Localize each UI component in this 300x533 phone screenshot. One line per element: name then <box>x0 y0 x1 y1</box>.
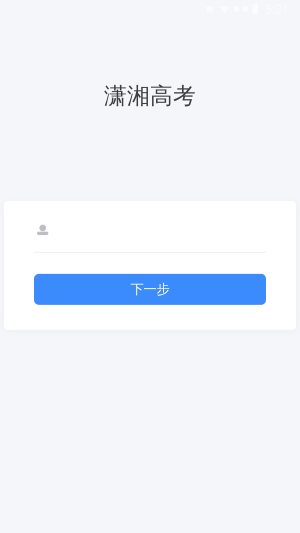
staticText: 下一步 <box>130 281 169 298</box>
button[interactable]: 下一步 <box>34 274 266 305</box>
button[interactable]: 账号 <box>4 201 296 252</box>
staticText: 潇湘高考 <box>104 82 196 110</box>
